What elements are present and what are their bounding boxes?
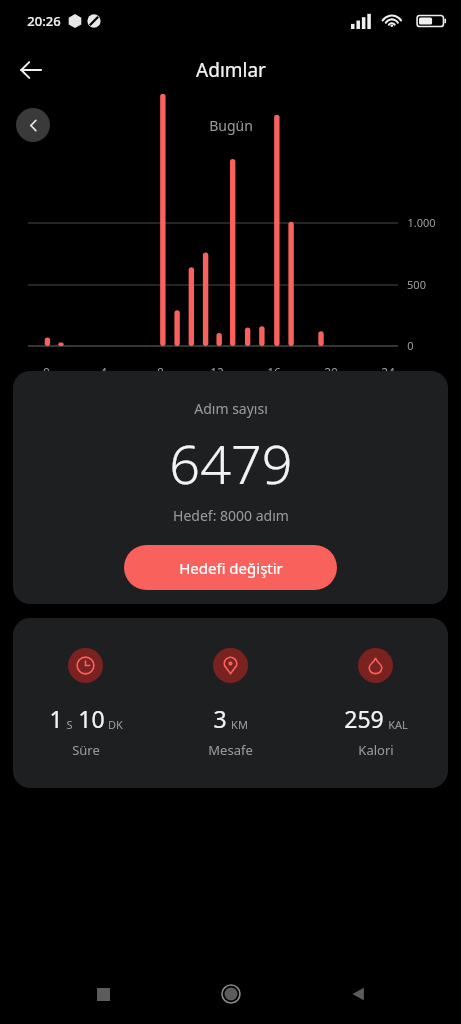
- button[interactable]: Home: [207, 970, 255, 1018]
- staticText: 24: [381, 364, 395, 380]
- staticText: Süre: [72, 741, 100, 759]
- button[interactable]: Hedefi değiştir: [124, 545, 337, 590]
- staticText: Bugün: [209, 116, 253, 135]
- staticText: KM: [231, 717, 248, 732]
- staticText: Mesafe: [208, 741, 253, 759]
- button[interactable]: 3: [158, 618, 303, 759]
- staticText: Adımlar: [196, 57, 266, 83]
- button[interactable]: Back: [334, 970, 382, 1018]
- staticText: Hedefi değiştir: [179, 558, 283, 578]
- staticText: 10: [78, 703, 105, 734]
- staticText: 16: [267, 364, 281, 380]
- staticText: 1.000: [407, 215, 436, 230]
- staticText: 12: [210, 364, 224, 380]
- staticText: 20: [324, 364, 338, 380]
- staticText: KAL: [388, 717, 408, 732]
- staticText: 4: [100, 364, 107, 380]
- staticText: 20:26: [27, 12, 61, 30]
- staticText: S: [66, 717, 73, 732]
- staticText: Kalori: [358, 741, 394, 759]
- button[interactable]: 259: [303, 618, 448, 759]
- button[interactable]: Back: [8, 47, 54, 93]
- staticText: DK: [108, 717, 123, 732]
- staticText: Hedef: 8000 adım: [173, 506, 289, 525]
- staticText: 259: [344, 703, 384, 734]
- staticText: 6479: [169, 426, 293, 500]
- staticText: 1: [49, 703, 63, 734]
- button[interactable]: Previous day: [16, 108, 50, 142]
- staticText: 500: [407, 277, 426, 292]
- staticText: 0: [43, 364, 50, 380]
- staticText: 0: [407, 338, 414, 353]
- button[interactable]: 1: [13, 618, 158, 759]
- staticText: 3: [213, 703, 227, 734]
- staticText: Adım sayısı: [194, 399, 268, 418]
- staticText: 8: [157, 364, 164, 380]
- button[interactable]: Recent apps: [79, 970, 127, 1018]
